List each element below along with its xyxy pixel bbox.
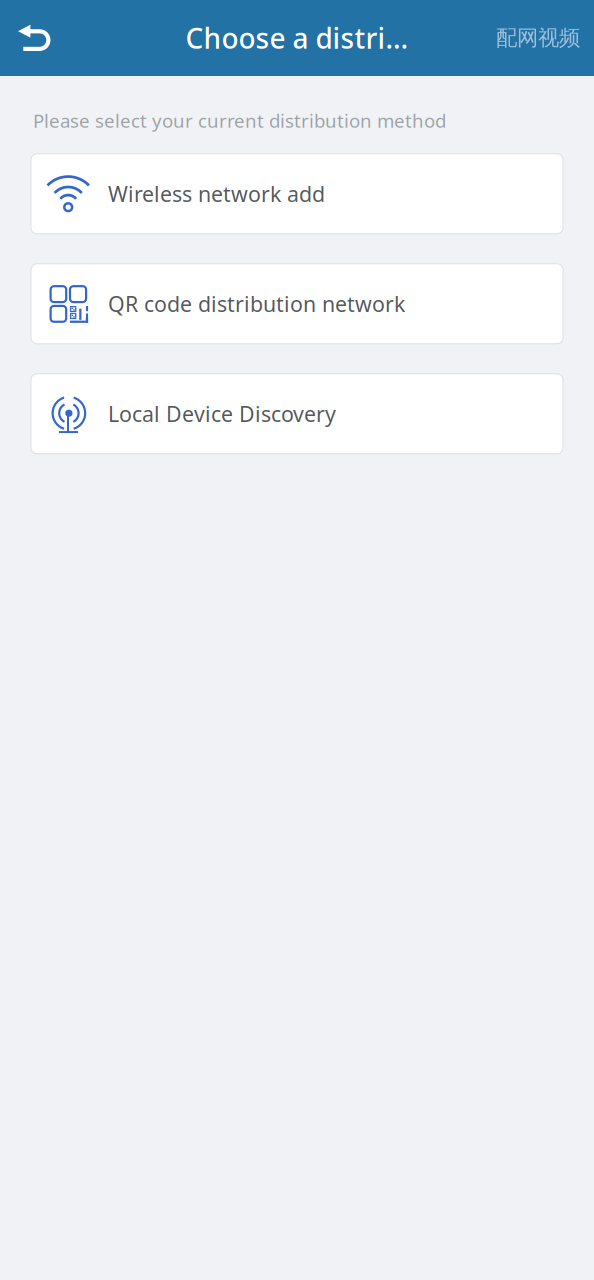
staticText: Wireless network add [108, 180, 325, 208]
staticText: Please select your current distribution … [33, 108, 446, 133]
staticText: QR code distribution network [108, 290, 405, 318]
button[interactable]: 配网视频 [482, 0, 594, 77]
staticText: 配网视频 [496, 25, 580, 51]
button[interactable]: Local Device Discovery [31, 374, 563, 454]
button[interactable]: QR code distribution network [31, 264, 563, 344]
staticText: Choose a distri… [185, 19, 408, 57]
staticText: Local Device Discovery [108, 400, 336, 428]
button[interactable]: Wireless network add [31, 154, 563, 234]
button[interactable]: Back [0, 0, 70, 75]
